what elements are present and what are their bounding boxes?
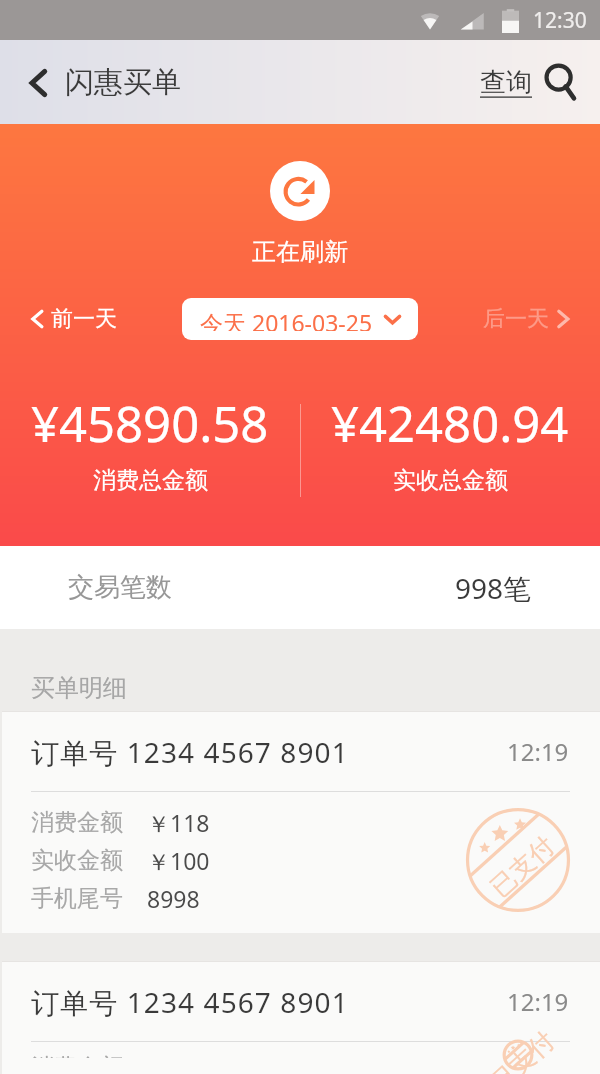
- staticText: 实收总金额: [393, 466, 508, 495]
- staticText: 正在刷新: [252, 237, 348, 267]
- button[interactable]: 查询: [468, 55, 600, 109]
- button[interactable]: 订单号 1234 4567 8901: [2, 711, 600, 933]
- staticText: 订单号 1234 4567 8901: [31, 733, 349, 771]
- button[interactable]: 订单号 1234 4567 8901: [2, 961, 600, 1074]
- staticText: 12:19: [507, 985, 569, 1018]
- button[interactable]: Refresh: [270, 161, 330, 221]
- staticText: ¥45890.58: [31, 390, 269, 457]
- staticText: 998笔: [455, 569, 532, 607]
- button[interactable]: Back: [0, 50, 195, 115]
- other: Back: [26, 66, 50, 100]
- staticText: 订单号 1234 4567 8901: [31, 983, 349, 1021]
- staticText: 今天 2016-03-25: [200, 307, 373, 331]
- button[interactable]: 交易笔数: [0, 546, 600, 629]
- staticText: 前一天: [51, 305, 117, 333]
- button[interactable]: 前一天: [0, 299, 131, 339]
- staticText: 买单明细: [31, 673, 127, 703]
- staticText: 消费总金额: [93, 466, 208, 495]
- staticText: ￥100: [147, 845, 210, 876]
- staticText: 实收金额: [31, 846, 123, 875]
- staticText: 手机尾号: [31, 884, 123, 913]
- button[interactable]: 今天 2016-03-25: [182, 298, 418, 340]
- staticText: 消费金额: [31, 1053, 123, 1058]
- staticText: 消费金额: [31, 808, 123, 837]
- staticText: ￥118: [147, 807, 210, 838]
- staticText: 闪惠买单: [65, 64, 181, 101]
- staticText: 12:19: [507, 735, 569, 768]
- staticText: 交易笔数: [68, 571, 172, 604]
- other: Search: [546, 65, 574, 99]
- staticText: ¥42480.94: [331, 390, 569, 457]
- staticText: 已支付: [484, 1025, 561, 1074]
- staticText: 12:30: [533, 6, 587, 35]
- button[interactable]: 后一天: [469, 299, 600, 339]
- staticText: 后一天: [483, 305, 549, 333]
- staticText: 已支付: [484, 830, 561, 903]
- staticText: 8998: [147, 883, 200, 914]
- staticText: 查询: [480, 66, 532, 99]
